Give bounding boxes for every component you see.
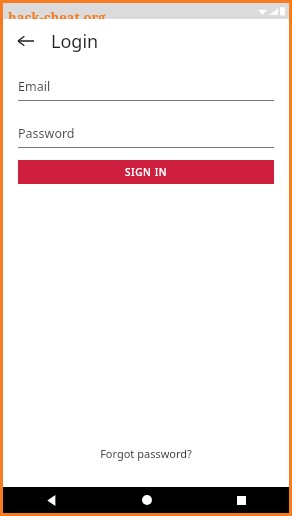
staticText: hack-cheat.org xyxy=(8,8,106,24)
button[interactable]: Back xyxy=(11,26,41,56)
button[interactable]: SIGN IN xyxy=(18,160,274,184)
button[interactable]: Forgot password? xyxy=(92,442,200,465)
button[interactable]: Home xyxy=(99,487,194,513)
button[interactable]: Recent apps xyxy=(194,487,289,513)
button[interactable]: Back xyxy=(3,487,99,513)
staticText: Email xyxy=(18,78,51,95)
staticText: Password xyxy=(18,125,75,142)
button[interactable]: Email xyxy=(18,78,274,101)
staticText: Forgot password? xyxy=(100,446,192,461)
staticText: SIGN IN xyxy=(125,165,168,179)
button[interactable]: Password xyxy=(18,125,274,148)
staticText: Login xyxy=(51,29,99,54)
